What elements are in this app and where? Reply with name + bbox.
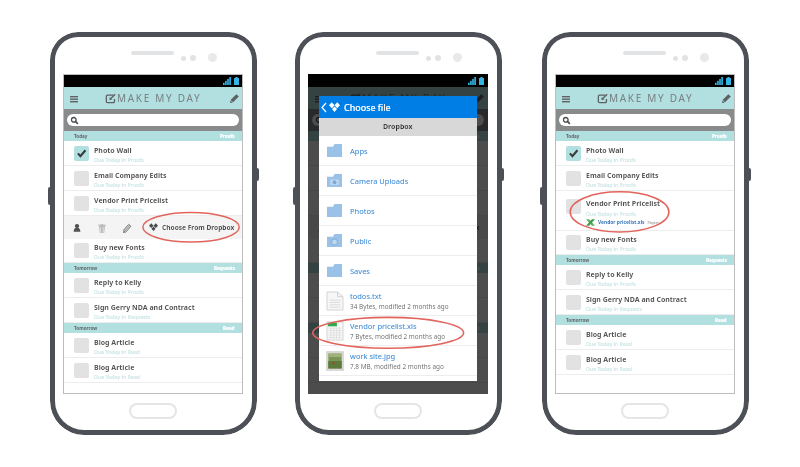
staticText: Email Company Edits bbox=[586, 171, 659, 181]
button[interactable]: Search bbox=[312, 114, 484, 126]
staticText: Due Today in Proofs bbox=[586, 280, 636, 287]
button[interactable]: Assign person bbox=[317, 223, 327, 233]
button[interactable]: Email Company Edits bbox=[63, 166, 243, 190]
staticText: Due Today in Read bbox=[586, 365, 633, 372]
button[interactable]: Menu bbox=[311, 91, 326, 106]
staticText: Requests bbox=[459, 265, 480, 271]
button[interactable]: Delete bbox=[342, 223, 352, 233]
staticText: Dropbox bbox=[383, 122, 413, 132]
staticText: Vendor Print Pricelist bbox=[339, 196, 413, 206]
button[interactable]: Search bbox=[67, 114, 239, 126]
staticText: Requests bbox=[706, 257, 727, 263]
staticText: Due Today in Read bbox=[94, 348, 141, 355]
button[interactable]: Compose bbox=[228, 92, 240, 104]
staticText: Choose From Dropbox bbox=[407, 223, 480, 232]
button[interactable]: Back bbox=[319, 96, 477, 118]
staticText: Reply to Kelly bbox=[339, 278, 387, 288]
button[interactable]: Buy new Fonts bbox=[308, 239, 488, 262]
button[interactable]: Reply to Kelly bbox=[308, 273, 488, 297]
staticText: Due Today in Proofs bbox=[586, 245, 636, 252]
staticText: Read bbox=[468, 325, 480, 331]
staticText: Vendor pricelist.xls bbox=[350, 321, 417, 331]
staticText: Read bbox=[715, 317, 727, 323]
staticText: Vendor pricelist.xls bbox=[598, 219, 645, 226]
staticText: 7bytes bbox=[647, 220, 660, 226]
staticText: Email Company Edits bbox=[339, 171, 412, 181]
button[interactable]: Sign Gerry NDA and Contract bbox=[63, 298, 243, 322]
staticText: MAKE MY DAY bbox=[609, 91, 694, 105]
staticText: 7.8 MB, modified 2 months ago bbox=[350, 362, 444, 371]
button[interactable]: Buy new Fonts bbox=[555, 231, 735, 254]
button[interactable]: Blog Article bbox=[555, 325, 735, 349]
staticText: Due Today in Proofs bbox=[94, 181, 144, 188]
staticText: Blog Article bbox=[339, 363, 380, 373]
staticText: Reply to Kelly bbox=[586, 270, 634, 280]
staticText: Due Today in Read bbox=[339, 373, 386, 380]
staticText: Email Company Edits bbox=[94, 171, 167, 181]
button[interactable]: Search bbox=[559, 114, 731, 126]
staticText: 7 Bytes, modified 2 months ago bbox=[350, 332, 446, 341]
staticText: Blog Article bbox=[94, 363, 135, 373]
staticText: Vendor Print Pricelist bbox=[94, 196, 168, 206]
staticText: Sign Gerry NDA and Contract bbox=[586, 295, 687, 305]
button[interactable]: Public bbox=[319, 226, 477, 255]
staticText: Proofs bbox=[220, 133, 235, 139]
staticText: Reply to Kelly bbox=[94, 278, 142, 288]
button[interactable]: Camera Uploads bbox=[319, 166, 477, 195]
button[interactable]: Menu bbox=[558, 91, 573, 106]
button[interactable]: Apps bbox=[319, 136, 477, 165]
staticText: Photo Wall bbox=[94, 146, 132, 156]
button[interactable]: Photos bbox=[319, 196, 477, 225]
button[interactable]: Blog Article bbox=[308, 358, 488, 382]
staticText: MAKE MY DAY bbox=[117, 91, 202, 105]
staticText: Due Today in Requests bbox=[586, 305, 643, 312]
button[interactable]: Vendor pricelist.xls bbox=[319, 316, 477, 345]
button[interactable]: Email Company Edits bbox=[555, 166, 735, 190]
button[interactable]: Buy new Fonts bbox=[63, 239, 243, 262]
button[interactable]: todos.txt bbox=[319, 286, 477, 315]
button[interactable]: Blog Article bbox=[63, 333, 243, 357]
button[interactable]: Assign person bbox=[72, 223, 82, 233]
staticText: Due Today in Proofs bbox=[94, 288, 144, 295]
button[interactable]: work site.jpg bbox=[319, 346, 477, 375]
button[interactable]: Edit bbox=[122, 223, 132, 233]
button[interactable]: Menu bbox=[66, 91, 81, 106]
button[interactable]: Choose From Dropbox bbox=[394, 223, 480, 232]
button[interactable]: Blog Article bbox=[555, 350, 735, 374]
staticText: Due Today in Read bbox=[586, 340, 633, 347]
button[interactable]: Choose From Dropbox bbox=[149, 223, 235, 232]
button[interactable]: Delete bbox=[97, 223, 107, 233]
staticText: Tomorrow bbox=[319, 265, 343, 271]
button[interactable]: Compose bbox=[473, 92, 485, 104]
staticText: Due Today in Requests bbox=[339, 313, 396, 320]
button[interactable]: Photo Wall bbox=[555, 141, 735, 165]
button[interactable]: Email Company Edits bbox=[308, 166, 488, 190]
staticText: Proofs bbox=[465, 133, 480, 139]
button[interactable]: Vendor Print Pricelist bbox=[308, 191, 488, 215]
button[interactable]: Photo Wall bbox=[63, 141, 243, 165]
button[interactable]: Reply to Kelly bbox=[63, 273, 243, 297]
button[interactable]: Edit bbox=[367, 223, 377, 233]
staticText: Due Today in Proofs bbox=[339, 206, 389, 213]
button[interactable]: Vendor Print Pricelist bbox=[63, 191, 243, 215]
staticText: Due Today in Read bbox=[94, 373, 141, 380]
staticText: Apps bbox=[350, 146, 368, 156]
button[interactable]: Reply to Kelly bbox=[555, 265, 735, 289]
button[interactable]: Saves bbox=[319, 256, 477, 285]
staticText: Due Today in Proofs bbox=[339, 181, 389, 188]
staticText: todos.txt bbox=[350, 291, 382, 301]
staticText: Sign Gerry NDA and Contract bbox=[94, 303, 195, 313]
staticText: Photo Wall bbox=[339, 146, 377, 156]
staticText: Blog Article bbox=[586, 355, 627, 365]
staticText: Photos bbox=[350, 206, 375, 216]
button[interactable]: Sign Gerry NDA and Contract bbox=[308, 298, 488, 322]
staticText: Sign Gerry NDA and Contract bbox=[339, 303, 440, 313]
staticText: Tomorrow bbox=[74, 325, 98, 331]
button[interactable]: Sign Gerry NDA and Contract bbox=[555, 290, 735, 314]
staticText: Due Today in Proofs bbox=[339, 288, 389, 295]
button[interactable]: Vendor Print Pricelist bbox=[555, 191, 735, 230]
button[interactable]: Blog Article bbox=[308, 333, 488, 357]
button[interactable]: Blog Article bbox=[63, 358, 243, 382]
button[interactable]: Photo Wall bbox=[308, 141, 488, 165]
button[interactable]: Compose bbox=[720, 92, 732, 104]
